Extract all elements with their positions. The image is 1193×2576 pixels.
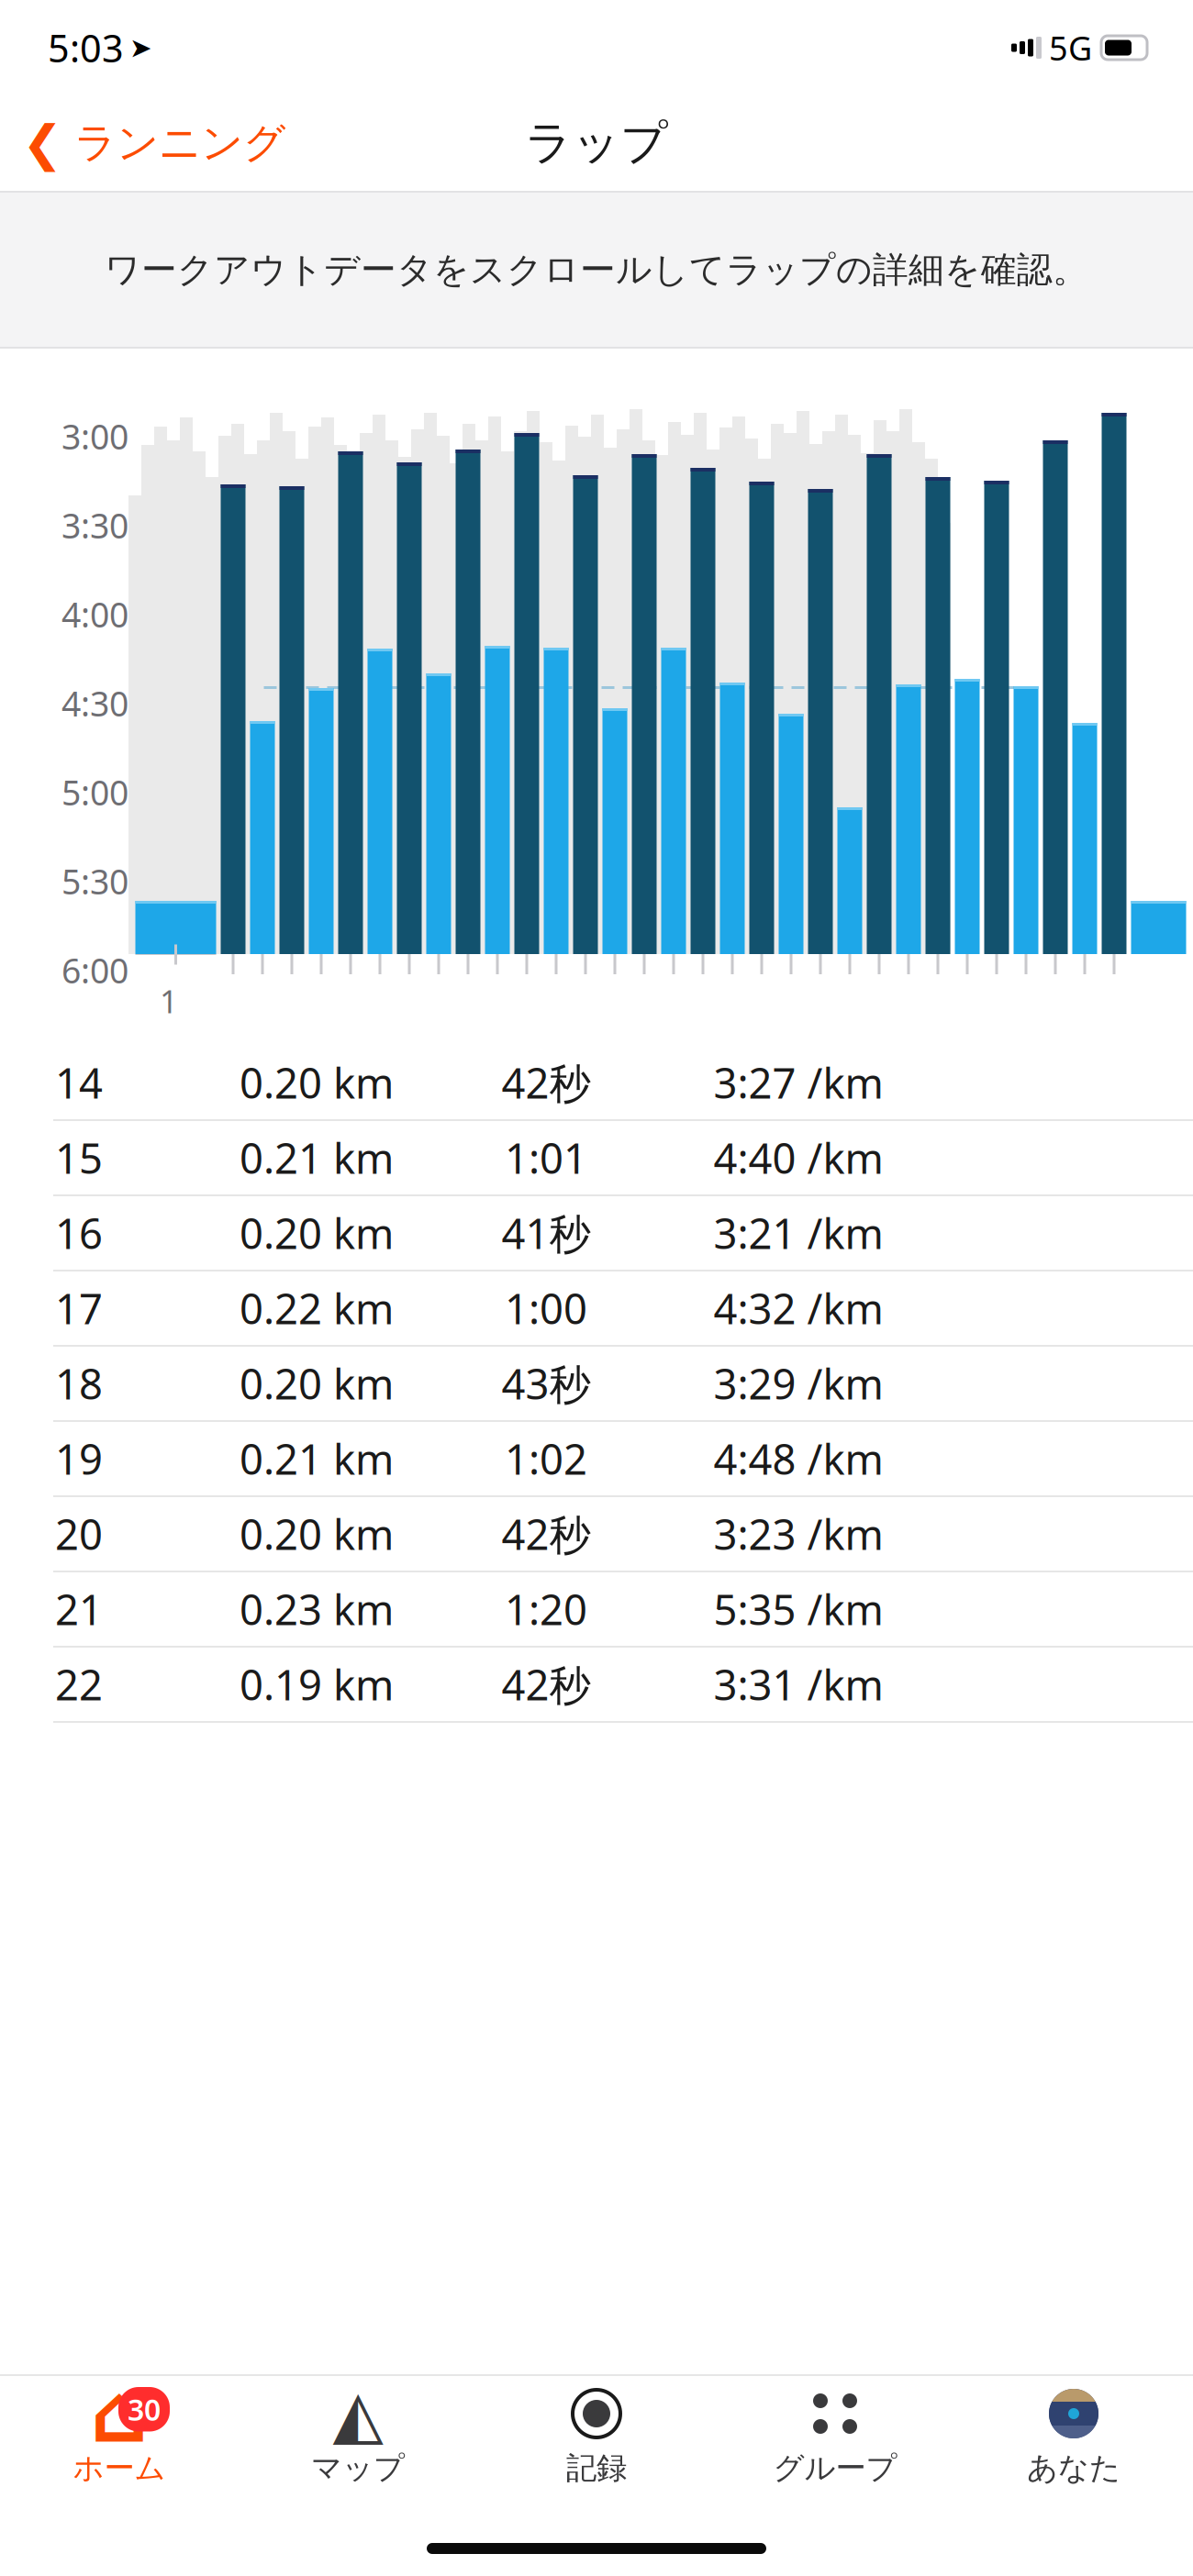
staticText: 3:27 /km bbox=[714, 1055, 883, 1110]
staticText: 0.22 km bbox=[240, 1281, 394, 1336]
button[interactable]: 14 bbox=[0, 1046, 1193, 1121]
button[interactable]: あなた bbox=[954, 2387, 1193, 2487]
staticText: 0.20 km bbox=[240, 1055, 394, 1110]
staticText: 3:30 bbox=[61, 502, 128, 548]
staticText: 30 bbox=[128, 2390, 161, 2429]
staticText: 16 bbox=[55, 1205, 103, 1261]
staticText: 5:03 bbox=[48, 23, 124, 73]
staticText: 43秒 bbox=[502, 1356, 591, 1411]
button[interactable]: 18 bbox=[0, 1347, 1193, 1422]
staticText: 0.21 km bbox=[240, 1130, 394, 1185]
staticText: 1:00 bbox=[505, 1281, 587, 1336]
staticText: 1:02 bbox=[505, 1431, 587, 1486]
staticText: 41秒 bbox=[502, 1205, 591, 1261]
staticText: 1:01 bbox=[505, 1130, 587, 1185]
staticText: ホーム bbox=[73, 2449, 166, 2487]
staticText: グループ bbox=[773, 2449, 897, 2487]
staticText: 17 bbox=[55, 1281, 103, 1336]
staticText: マップ bbox=[311, 2449, 405, 2487]
staticText: 42秒 bbox=[502, 1506, 591, 1561]
staticText: 4:48 /km bbox=[714, 1431, 883, 1486]
staticText: 4:30 bbox=[61, 680, 128, 726]
staticText: 6:00 bbox=[61, 947, 128, 993]
button[interactable]: 15 bbox=[0, 1121, 1193, 1196]
button[interactable]: グループ bbox=[716, 2387, 954, 2487]
button[interactable]: 20 bbox=[0, 1497, 1193, 1572]
staticText: ➤ bbox=[129, 32, 152, 63]
staticText: 15 bbox=[55, 1130, 103, 1185]
staticText: 19 bbox=[55, 1431, 103, 1486]
staticText: 3:21 /km bbox=[714, 1205, 883, 1261]
button[interactable]: 19 bbox=[0, 1422, 1193, 1497]
staticText: 0.19 km bbox=[240, 1657, 394, 1712]
staticText: 記録 bbox=[566, 2449, 627, 2487]
staticText: ランニング bbox=[74, 118, 285, 169]
staticText: 5G bbox=[1049, 26, 1092, 70]
staticText: 3:31 /km bbox=[714, 1657, 883, 1712]
button[interactable]: 16 bbox=[0, 1196, 1193, 1271]
staticText: 0.20 km bbox=[240, 1205, 394, 1261]
staticText: 5:30 bbox=[61, 858, 128, 904]
staticText: 21 bbox=[55, 1581, 103, 1637]
staticText: 0.23 km bbox=[240, 1581, 394, 1637]
staticText: 3:29 /km bbox=[714, 1356, 883, 1411]
staticText: 3:00 bbox=[61, 413, 128, 459]
staticText: 14 bbox=[55, 1055, 103, 1110]
staticText: 4:00 bbox=[61, 591, 128, 637]
button[interactable]: 17 bbox=[0, 1271, 1193, 1347]
staticText: ⌂ bbox=[90, 2368, 148, 2459]
staticText: ◭ bbox=[333, 2376, 383, 2451]
staticText: 20 bbox=[55, 1506, 103, 1561]
staticText: 42秒 bbox=[502, 1055, 591, 1110]
staticText: ラップ bbox=[525, 115, 668, 172]
staticText: ワークアウトデータをスクロールしてラップの詳細を確認。 bbox=[105, 248, 1088, 292]
staticText: 5:35 /km bbox=[714, 1581, 883, 1637]
staticText: あなた bbox=[1027, 2449, 1121, 2487]
button[interactable]: ⌂ bbox=[0, 2387, 239, 2487]
staticText: ❮ bbox=[22, 115, 63, 171]
staticText: 1 bbox=[160, 980, 178, 1022]
button[interactable]: 22 bbox=[0, 1648, 1193, 1723]
staticText: 0.20 km bbox=[240, 1506, 394, 1561]
staticText: 42秒 bbox=[502, 1657, 591, 1712]
staticText: 1:20 bbox=[505, 1581, 587, 1637]
staticText: 4:40 /km bbox=[714, 1130, 883, 1185]
staticText: 22 bbox=[55, 1657, 103, 1712]
button[interactable]: ❮ bbox=[0, 106, 285, 180]
staticText: 18 bbox=[55, 1356, 103, 1411]
button[interactable]: ◭ bbox=[239, 2387, 477, 2487]
button[interactable]: 21 bbox=[0, 1572, 1193, 1648]
staticText: 5:00 bbox=[61, 769, 128, 815]
staticText: 0.21 km bbox=[240, 1431, 394, 1486]
staticText: 4:32 /km bbox=[714, 1281, 883, 1336]
staticText: 0.20 km bbox=[240, 1356, 394, 1411]
staticText: 3:23 /km bbox=[714, 1506, 883, 1561]
button[interactable]: 記録 bbox=[477, 2387, 716, 2487]
